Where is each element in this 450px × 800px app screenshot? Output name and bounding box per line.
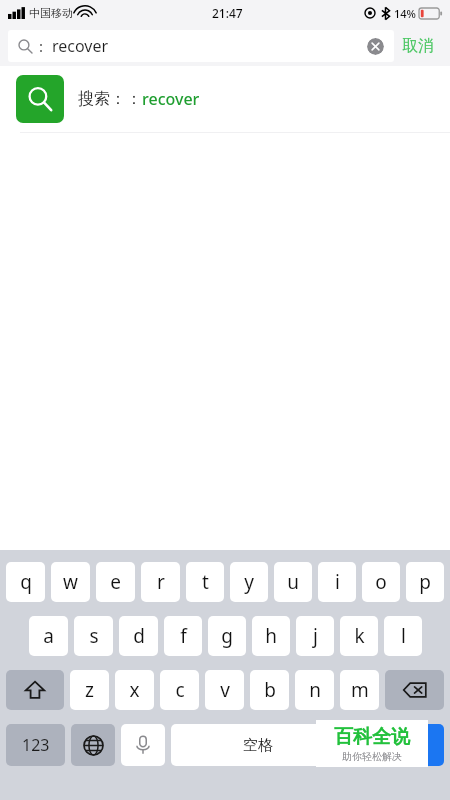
staticText: i xyxy=(335,569,340,595)
button[interactable]: l xyxy=(384,616,422,656)
button[interactable]: n xyxy=(295,670,334,710)
staticText: ： xyxy=(126,89,142,109)
staticText: 14% xyxy=(394,6,416,21)
button[interactable]: j xyxy=(296,616,334,656)
button[interactable]: Clear xyxy=(367,38,384,55)
button[interactable]: 取消 xyxy=(394,32,442,60)
button[interactable]: z xyxy=(70,670,109,710)
button[interactable]: o xyxy=(362,562,400,602)
button[interactable]: 搜索： xyxy=(0,66,450,132)
staticText: 123 xyxy=(22,734,50,756)
button[interactable]: d xyxy=(119,616,158,656)
staticText: : xyxy=(39,36,44,56)
button[interactable]: g xyxy=(208,616,246,656)
button[interactable]: h xyxy=(252,616,290,656)
staticText: b xyxy=(264,677,276,703)
staticText: x xyxy=(129,677,140,703)
staticText: d xyxy=(133,623,145,649)
staticText: j xyxy=(313,623,318,649)
staticText: t xyxy=(202,569,209,595)
staticText: 空格 xyxy=(243,736,273,755)
button[interactable]: k xyxy=(340,616,378,656)
staticText: s xyxy=(89,623,99,649)
staticText: 搜索： xyxy=(78,89,126,109)
staticText: q xyxy=(20,569,32,595)
staticText: l xyxy=(401,623,406,649)
staticText: f xyxy=(180,623,187,649)
staticText: n xyxy=(309,677,321,703)
staticText: e xyxy=(110,569,121,595)
staticText: c xyxy=(175,677,185,703)
button[interactable]: w xyxy=(51,562,90,602)
button[interactable]: m xyxy=(340,670,379,710)
button[interactable]: i xyxy=(318,562,356,602)
button[interactable]: v xyxy=(205,670,244,710)
staticText: recover xyxy=(142,88,200,110)
staticText: 21:47 xyxy=(212,5,243,21)
staticText: u xyxy=(287,569,299,595)
staticText: 搜索 xyxy=(383,736,413,755)
button[interactable]: f xyxy=(164,616,202,656)
button[interactable]: x xyxy=(115,670,154,710)
button[interactable]: y xyxy=(230,562,268,602)
staticText: w xyxy=(63,569,78,595)
button[interactable]: Switch keyboard xyxy=(71,724,115,766)
button[interactable]: b xyxy=(250,670,289,710)
button[interactable]: : xyxy=(8,30,394,62)
staticText: 百科全说 xyxy=(334,725,410,749)
button[interactable]: Numbers xyxy=(6,724,65,766)
staticText: m xyxy=(351,677,369,703)
staticText: p xyxy=(419,569,431,595)
staticText: y xyxy=(244,569,254,595)
staticText: o xyxy=(375,569,387,595)
staticText: 取消 xyxy=(402,36,434,56)
staticText: z xyxy=(85,677,94,703)
button[interactable]: 搜索 xyxy=(351,724,444,766)
button[interactable]: u xyxy=(274,562,312,602)
staticText: a xyxy=(43,623,54,649)
staticText: 助你轻松解决 xyxy=(342,750,402,763)
staticText: h xyxy=(265,623,277,649)
button[interactable]: q xyxy=(6,562,45,602)
staticText: 中国移动 xyxy=(29,6,73,20)
button[interactable]: a xyxy=(29,616,68,656)
staticText: k xyxy=(354,623,365,649)
button[interactable]: Shift xyxy=(6,670,64,710)
button[interactable]: p xyxy=(406,562,444,602)
button[interactable]: 空格 xyxy=(171,724,345,766)
staticText: recover xyxy=(52,35,109,57)
button[interactable]: Delete xyxy=(385,670,444,710)
button[interactable]: e xyxy=(96,562,135,602)
button[interactable]: r xyxy=(141,562,180,602)
staticText: g xyxy=(221,623,233,649)
button[interactable]: Dictation xyxy=(121,724,165,766)
button[interactable]: t xyxy=(186,562,224,602)
button[interactable]: s xyxy=(74,616,113,656)
button[interactable]: c xyxy=(160,670,199,710)
staticText: v xyxy=(220,677,230,703)
staticText: r xyxy=(157,569,165,595)
